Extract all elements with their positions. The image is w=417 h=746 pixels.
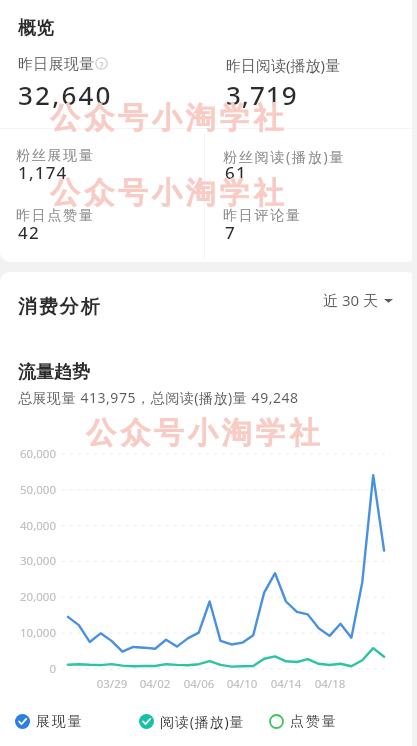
staticText: 04/14 xyxy=(264,676,308,692)
staticText: 展现量 xyxy=(36,713,84,731)
staticText: 公众号小淘学社 xyxy=(86,414,324,452)
staticText: 04/02 xyxy=(133,676,177,692)
staticText: 40,000 xyxy=(0,518,56,534)
button[interactable]: 点赞量 xyxy=(269,711,338,732)
staticText: 粉丝展现量 xyxy=(16,147,95,165)
staticText: 昨日点赞量 xyxy=(16,207,95,225)
button[interactable]: 昨日展现量 xyxy=(0,46,417,121)
staticText: 32,640 xyxy=(18,77,113,112)
staticText: 04/10 xyxy=(220,676,264,692)
button[interactable]: 昨日评论量 xyxy=(225,201,405,253)
staticText: 60,000 xyxy=(0,446,56,462)
button[interactable]: 近 30 天 xyxy=(323,289,393,311)
staticText: 阅读(播放)量 xyxy=(160,712,245,731)
staticText: 1,174 xyxy=(18,161,68,184)
staticText: 总展现量 413,975，总阅读(播放)量 49,248 xyxy=(18,388,299,407)
staticText: 50,000 xyxy=(0,482,56,498)
button[interactable]: 展现量 xyxy=(15,711,84,732)
staticText: 公众号小淘学社 xyxy=(50,99,288,137)
staticText: 04/06 xyxy=(177,676,221,692)
staticText: 10,000 xyxy=(0,625,56,641)
button[interactable]: 粉丝展现量 xyxy=(18,141,198,193)
staticText: 概览 xyxy=(18,17,54,40)
staticText: 42 xyxy=(18,221,40,244)
button[interactable]: 阅读(播放)量 xyxy=(139,711,245,732)
staticText: 粉丝阅读(播放)量 xyxy=(223,147,346,166)
staticText: 点赞量 xyxy=(290,713,338,731)
staticText: 30,000 xyxy=(0,553,56,569)
staticText: 20,000 xyxy=(0,589,56,605)
staticText: 3,719 xyxy=(226,77,298,112)
staticText: 公众号小淘学社 xyxy=(50,174,288,212)
button[interactable]: 粉丝阅读(播放)量 xyxy=(225,141,405,193)
staticText: 03/29 xyxy=(90,676,134,692)
staticText: 消费分析 xyxy=(18,295,102,319)
button[interactable]: 昨日点赞量 xyxy=(18,201,198,253)
staticText: 昨日阅读(播放)量 xyxy=(226,55,341,75)
staticText: ? xyxy=(95,59,108,72)
staticText: 近 30 天 xyxy=(323,290,378,310)
staticText: 7 xyxy=(225,221,236,244)
staticText: 昨日评论量 xyxy=(223,207,302,225)
staticText: 61 xyxy=(225,161,247,184)
staticText: 04/18 xyxy=(308,676,352,692)
staticText: 昨日展现量 xyxy=(18,55,94,74)
staticText: 流量趋势 xyxy=(18,361,90,384)
staticText: 0 xyxy=(0,661,56,677)
